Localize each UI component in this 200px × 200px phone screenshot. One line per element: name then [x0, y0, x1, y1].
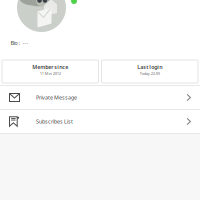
staticText: Private Message — [36, 94, 77, 101]
staticText: Today 22:09 — [140, 71, 160, 76]
staticText: Subscribes List — [36, 118, 73, 125]
button[interactable]: Subscribes List — [0, 110, 200, 133]
staticText: Member since — [32, 63, 68, 71]
staticText: --- — [22, 39, 28, 47]
button[interactable]: Private Message — [0, 86, 200, 109]
staticText: Bio : — [10, 39, 19, 47]
staticText: 11 Mei 2012 — [40, 71, 61, 76]
staticText: Last login — [137, 63, 162, 71]
